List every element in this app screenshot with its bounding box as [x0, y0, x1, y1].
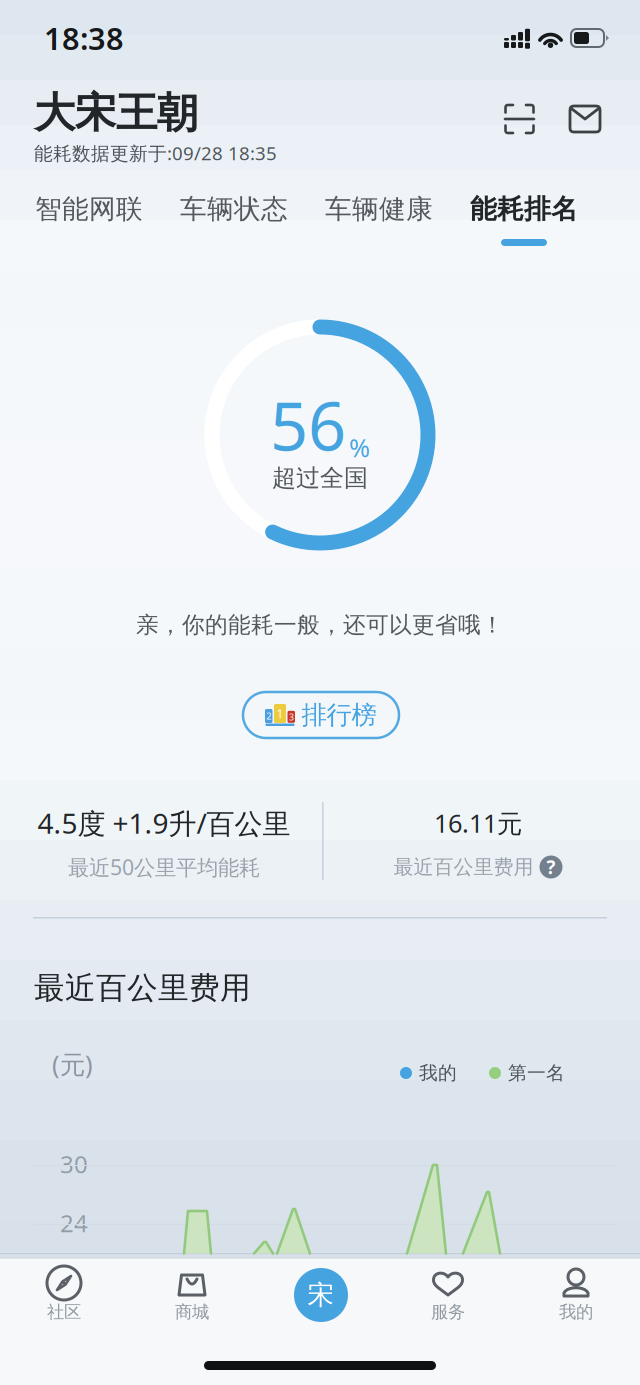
button[interactable]: 车辆状态: [167, 190, 301, 252]
staticText: 18:38: [44, 18, 124, 58]
staticText: (元): [52, 1047, 93, 1081]
button[interactable]: 能耗排名: [457, 190, 591, 252]
button[interactable]: 社区: [4, 1257, 124, 1353]
staticText: 最近百公里费用: [34, 969, 251, 1007]
button[interactable]: Messages: [563, 97, 607, 141]
staticText: 能耗排名: [470, 193, 578, 225]
button[interactable]: 2: [243, 692, 399, 738]
staticText: 宋: [307, 1279, 334, 1311]
staticText: %: [349, 431, 370, 464]
staticText: 商城: [175, 1301, 209, 1323]
staticText: 1: [276, 705, 283, 721]
staticText: 超过全国: [272, 463, 368, 493]
button[interactable]: Scan code: [496, 97, 540, 141]
staticText: 大宋王朝: [34, 88, 198, 138]
staticText: 最近百公里费用: [393, 855, 533, 879]
staticText: 智能网联: [35, 193, 143, 225]
staticText: 3: [289, 711, 294, 723]
staticText: 24: [60, 1207, 88, 1239]
button[interactable]: 我的: [516, 1257, 636, 1353]
staticText: 亲，你的能耗一般，还可以更省哦！: [136, 611, 504, 639]
staticText: 第一名: [508, 1061, 565, 1084]
staticText: ?: [546, 855, 555, 879]
button[interactable]: 服务: [388, 1257, 508, 1353]
staticText: 社区: [47, 1301, 81, 1323]
staticText: 排行榜: [301, 699, 376, 730]
staticText: 56: [270, 381, 346, 469]
staticText: 16.11元: [434, 806, 522, 840]
staticText: 我的: [559, 1301, 593, 1323]
button[interactable]: Home: [261, 1268, 381, 1364]
staticText: 2: [266, 710, 271, 722]
staticText: 服务: [431, 1301, 465, 1323]
staticText: 能耗数据更新于:09/28 18:35: [34, 141, 277, 165]
staticText: 车辆状态: [180, 193, 288, 225]
staticText: 4.5度 +1.9升/百公里: [37, 804, 290, 842]
staticText: 30: [60, 1148, 88, 1180]
button[interactable]: 智能网联: [22, 190, 156, 252]
button[interactable]: 商城: [132, 1257, 252, 1353]
staticText: 我的: [419, 1061, 457, 1084]
button[interactable]: 车辆健康: [312, 190, 446, 252]
staticText: 车辆健康: [325, 193, 433, 225]
staticText: 最近50公里平均能耗: [68, 853, 260, 881]
